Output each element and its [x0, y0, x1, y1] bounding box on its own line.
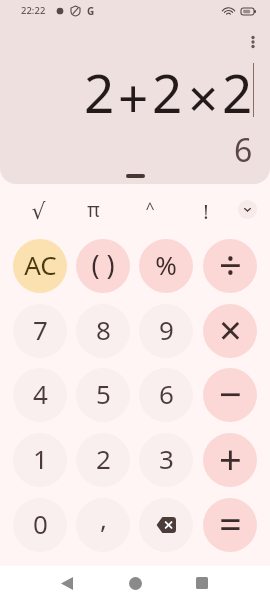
staticText: G [87, 4, 95, 18]
button[interactable]: Expand keypad [238, 200, 257, 219]
staticText: √ [31, 199, 46, 225]
staticText: 9 [159, 312, 174, 347]
staticText: , [100, 501, 107, 536]
staticText: ÷ [219, 239, 242, 291]
button[interactable]: AC [13, 239, 67, 293]
staticText: 6 [159, 376, 174, 411]
button[interactable]: 7 [13, 304, 67, 358]
staticText: − [219, 368, 242, 420]
button[interactable]: × [203, 304, 257, 358]
button[interactable]: Home [120, 568, 150, 598]
button[interactable]: 4 [13, 368, 67, 422]
staticText: 1 [33, 441, 48, 476]
button[interactable]: 3 [139, 433, 193, 487]
button[interactable]: ! [186, 190, 226, 230]
button[interactable]: 9 [139, 304, 193, 358]
button[interactable]: , [76, 498, 130, 552]
staticText: ( ) [91, 246, 115, 283]
button[interactable]: π [73, 190, 113, 230]
staticText: 5 [96, 376, 111, 411]
button[interactable]: ( ) [76, 239, 130, 293]
button[interactable]: ^ [130, 190, 170, 230]
button[interactable]: 1 [13, 433, 67, 487]
button[interactable]: More options [239, 28, 267, 56]
button[interactable]: Back [52, 568, 82, 598]
staticText: 3 [159, 441, 174, 476]
staticText: + [219, 433, 242, 485]
staticText: 2 [84, 56, 115, 128]
staticText: × [188, 61, 219, 133]
staticText: 2 [222, 56, 253, 128]
staticText: + [118, 61, 149, 133]
staticText: π [87, 197, 100, 223]
staticText: 2 [152, 56, 183, 128]
button[interactable]: Recent apps [187, 568, 217, 598]
staticText: 6 [234, 128, 253, 172]
button[interactable]: ÷ [203, 239, 257, 293]
staticText: % [155, 247, 177, 282]
staticText: 2 [96, 441, 111, 476]
button[interactable]: Backspace [139, 498, 193, 552]
staticText: 4 [33, 376, 48, 411]
staticText: AC [24, 247, 57, 282]
button[interactable]: 5 [76, 368, 130, 422]
button[interactable]: 6 [139, 368, 193, 422]
button[interactable]: 2 [76, 433, 130, 487]
button[interactable]: √ [18, 190, 58, 230]
staticText: × [219, 304, 242, 356]
other: Backspace [154, 513, 178, 537]
staticText: 8 [96, 312, 111, 347]
button[interactable] [126, 174, 145, 178]
staticText: 7 [33, 312, 48, 347]
staticText: 22:22 [21, 4, 46, 17]
button[interactable]: 0 [13, 498, 67, 552]
button[interactable]: 8 [76, 304, 130, 358]
staticText: ^ [145, 197, 155, 219]
staticText: 0 [33, 506, 48, 541]
staticText: ! [203, 198, 209, 225]
staticText: = [219, 498, 242, 550]
button[interactable]: % [139, 239, 193, 293]
button[interactable]: − [203, 368, 257, 422]
button[interactable]: + [203, 433, 257, 487]
button[interactable]: = [203, 498, 257, 552]
